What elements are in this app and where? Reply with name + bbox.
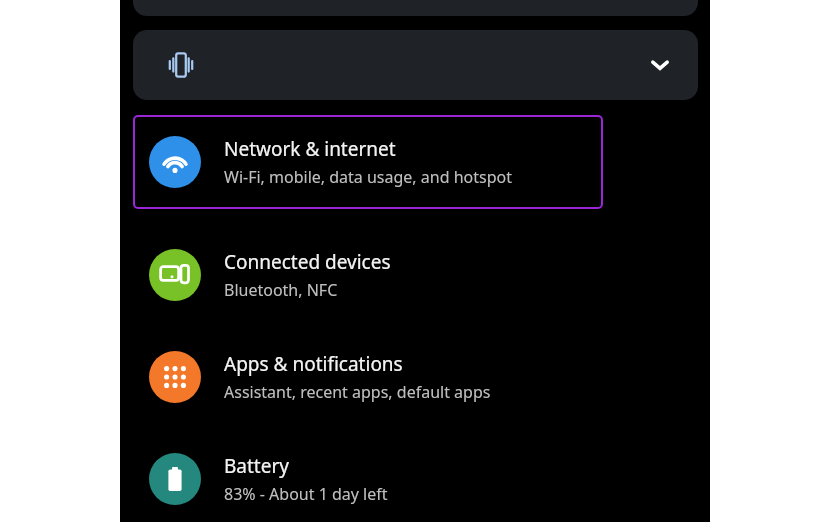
button[interactable]: Battery (133, 432, 603, 522)
button[interactable]: Network & internet (133, 115, 603, 209)
button[interactable]: Apps & notifications (133, 330, 603, 424)
staticText: Battery (224, 453, 289, 479)
staticText: Apps & notifications (224, 351, 403, 377)
staticText: Wi-Fi, mobile, data usage, and hotspot (224, 166, 512, 188)
staticText: Assistant, recent apps, default apps (224, 381, 491, 403)
staticText: Network & internet (224, 136, 396, 162)
button[interactable]: Settings suggestion (133, 0, 698, 16)
button[interactable]: Connected devices (133, 228, 603, 322)
button[interactable]: Vibration, expand (133, 30, 698, 100)
staticText: Bluetooth, NFC (224, 279, 338, 301)
staticText: 83% - About 1 day left (224, 483, 388, 505)
staticText: Connected devices (224, 249, 391, 275)
